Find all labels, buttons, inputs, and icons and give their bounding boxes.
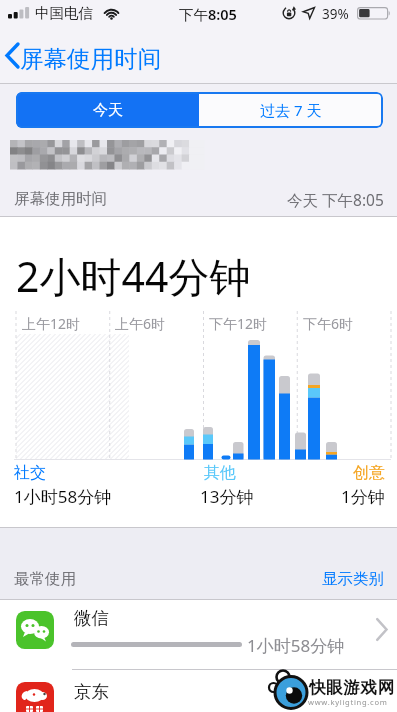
staticText: 下午6时: [303, 314, 354, 333]
staticText: www.kyligting.com: [308, 697, 388, 707]
staticText: 上午12时: [22, 314, 81, 333]
staticText: 显示类别: [322, 569, 384, 589]
staticText: 屏幕使用时间: [20, 44, 161, 74]
staticText: 下午12时: [209, 314, 268, 333]
staticText: 快眼游戏网: [309, 677, 395, 698]
staticText: 中国电信: [35, 4, 93, 22]
staticText: 创意: [353, 463, 385, 483]
staticText: 下午8:05: [179, 4, 237, 24]
staticText: 微信: [74, 607, 109, 629]
staticText: 其他: [204, 463, 236, 483]
staticText: 39%: [322, 5, 349, 23]
staticText: 今天 下午8:05: [287, 189, 384, 210]
staticText: 2小时44分钟: [16, 248, 251, 304]
staticText: 1小时58分钟: [247, 634, 345, 657]
staticText: 13分钟: [200, 485, 254, 508]
staticText: 1小时58分钟: [14, 485, 112, 508]
staticText: 京东: [74, 681, 109, 703]
staticText: 过去 7 天: [260, 100, 322, 120]
staticText: 最常使用: [14, 569, 76, 589]
staticText: 今天: [93, 101, 123, 120]
staticText: 屏幕使用时间: [14, 189, 107, 209]
staticText: 1分钟: [341, 485, 385, 508]
staticText: 社交: [14, 463, 46, 483]
staticText: 上午6时: [115, 314, 166, 333]
